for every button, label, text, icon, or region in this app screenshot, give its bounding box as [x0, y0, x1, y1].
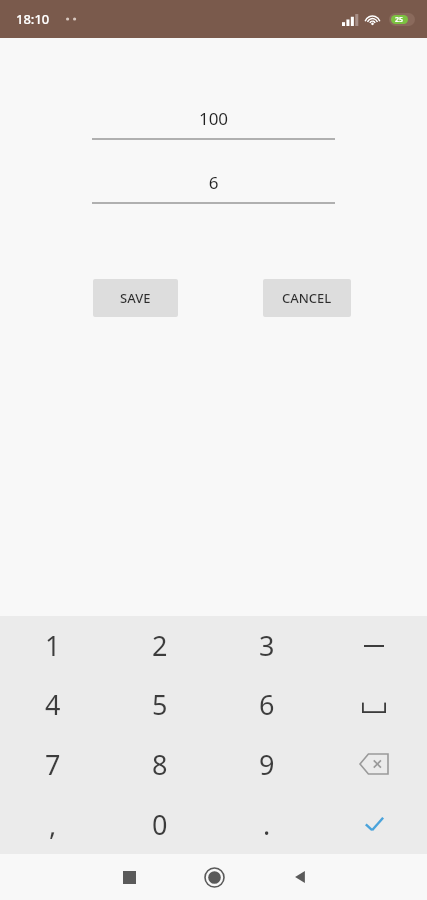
staticText: 2: [152, 627, 168, 664]
staticText: 1: [45, 627, 61, 664]
staticText: ,: [49, 806, 57, 843]
button[interactable]: Home: [172, 854, 257, 900]
staticText: 4: [45, 686, 61, 723]
staticText: .: [263, 806, 271, 843]
staticText: 100: [92, 107, 335, 130]
staticText: 8: [152, 746, 168, 783]
button[interactable]: 8: [106, 734, 213, 794]
button[interactable]: Recents: [86, 854, 172, 900]
staticText: 6: [259, 686, 275, 723]
staticText: CANCEL: [282, 289, 332, 307]
button[interactable]: Space: [320, 675, 427, 734]
staticText: SAVE: [120, 289, 151, 307]
button[interactable]: CANCEL: [263, 279, 351, 317]
button[interactable]: 4: [0, 675, 106, 734]
staticText: 25: [395, 15, 404, 24]
button[interactable]: Done: [320, 794, 427, 854]
button[interactable]: 6: [213, 675, 320, 734]
button[interactable]: 3: [213, 616, 320, 675]
staticText: 18:10: [16, 10, 50, 28]
button[interactable]: 9: [213, 734, 320, 794]
staticText: 7: [45, 746, 61, 783]
staticText: 3: [259, 627, 275, 664]
staticText: 5: [152, 686, 168, 723]
button[interactable]: 5: [106, 675, 213, 734]
button[interactable]: 7: [0, 734, 106, 794]
button[interactable]: Backspace: [320, 734, 427, 794]
button[interactable]: 100: [92, 107, 335, 140]
button[interactable]: .: [213, 794, 320, 854]
staticText: 0: [152, 806, 168, 843]
staticText: 9: [259, 746, 275, 783]
button[interactable]: SAVE: [93, 279, 178, 317]
button[interactable]: Dash: [320, 616, 427, 675]
staticText: 6: [92, 171, 335, 194]
button[interactable]: 0: [106, 794, 213, 854]
button[interactable]: Back: [257, 854, 342, 900]
button[interactable]: 2: [106, 616, 213, 675]
button[interactable]: 1: [0, 616, 106, 675]
button[interactable]: ,: [0, 794, 106, 854]
button[interactable]: 6: [92, 171, 335, 204]
